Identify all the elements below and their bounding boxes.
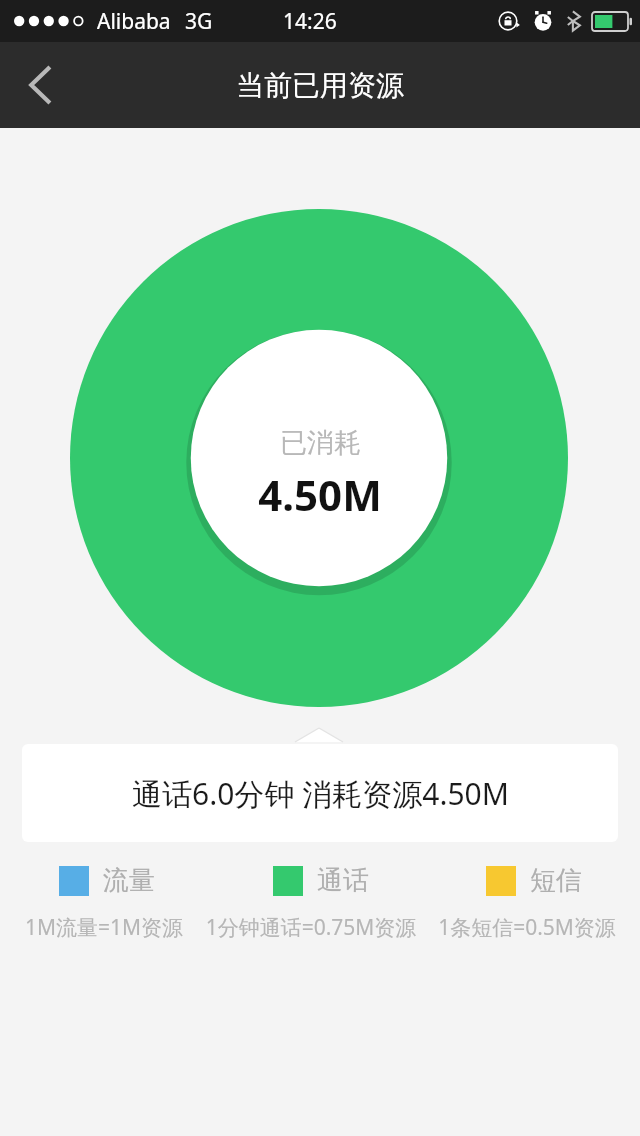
button[interactable]: 通话: [214, 864, 427, 897]
staticText: 4.50M: [258, 466, 382, 523]
staticText: 1条短信=0.5M资源: [426, 913, 628, 942]
staticText: 流量: [103, 864, 155, 897]
staticText: 1M流量=1M资源: [12, 913, 196, 942]
staticText: 已消耗: [280, 426, 361, 460]
button[interactable]: 流量: [0, 864, 214, 897]
staticText: 短信: [530, 864, 582, 897]
button[interactable]: Back: [8, 53, 72, 117]
staticText: 14:26: [283, 7, 337, 36]
button[interactable]: 短信: [427, 864, 640, 897]
staticText: 1分钟通话=0.75M资源: [196, 913, 426, 942]
staticText: 通话6.0分钟 消耗资源4.50M: [132, 773, 509, 814]
staticText: 当前已用资源: [236, 68, 404, 103]
staticText: 3G: [185, 7, 213, 36]
button[interactable]: 通话6.0分钟 消耗资源4.50M: [22, 744, 618, 842]
staticText: 通话: [317, 864, 369, 897]
staticText: Alibaba: [97, 7, 171, 36]
